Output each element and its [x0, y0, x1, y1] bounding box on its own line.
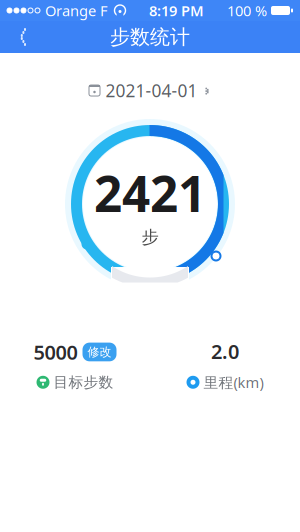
staticText: 步	[141, 227, 158, 248]
staticText: Orange F	[45, 1, 108, 20]
staticText: 2021-04-01	[105, 79, 197, 102]
button[interactable]: 修改	[82, 343, 116, 361]
staticText: 5000	[33, 339, 77, 365]
staticText: 100 %	[227, 1, 267, 20]
staticText: 8:19 PM	[149, 1, 204, 20]
staticText: 目标步数	[53, 373, 113, 391]
staticText: 里程(km)	[203, 372, 263, 392]
staticText: 2.0	[211, 338, 239, 365]
staticText: 步数统计	[110, 25, 190, 49]
staticText: 修改	[87, 345, 111, 359]
button[interactable]: 2021-04-01	[80, 75, 219, 106]
button[interactable]: Back	[0, 21, 42, 53]
staticText: 2421	[94, 160, 206, 226]
